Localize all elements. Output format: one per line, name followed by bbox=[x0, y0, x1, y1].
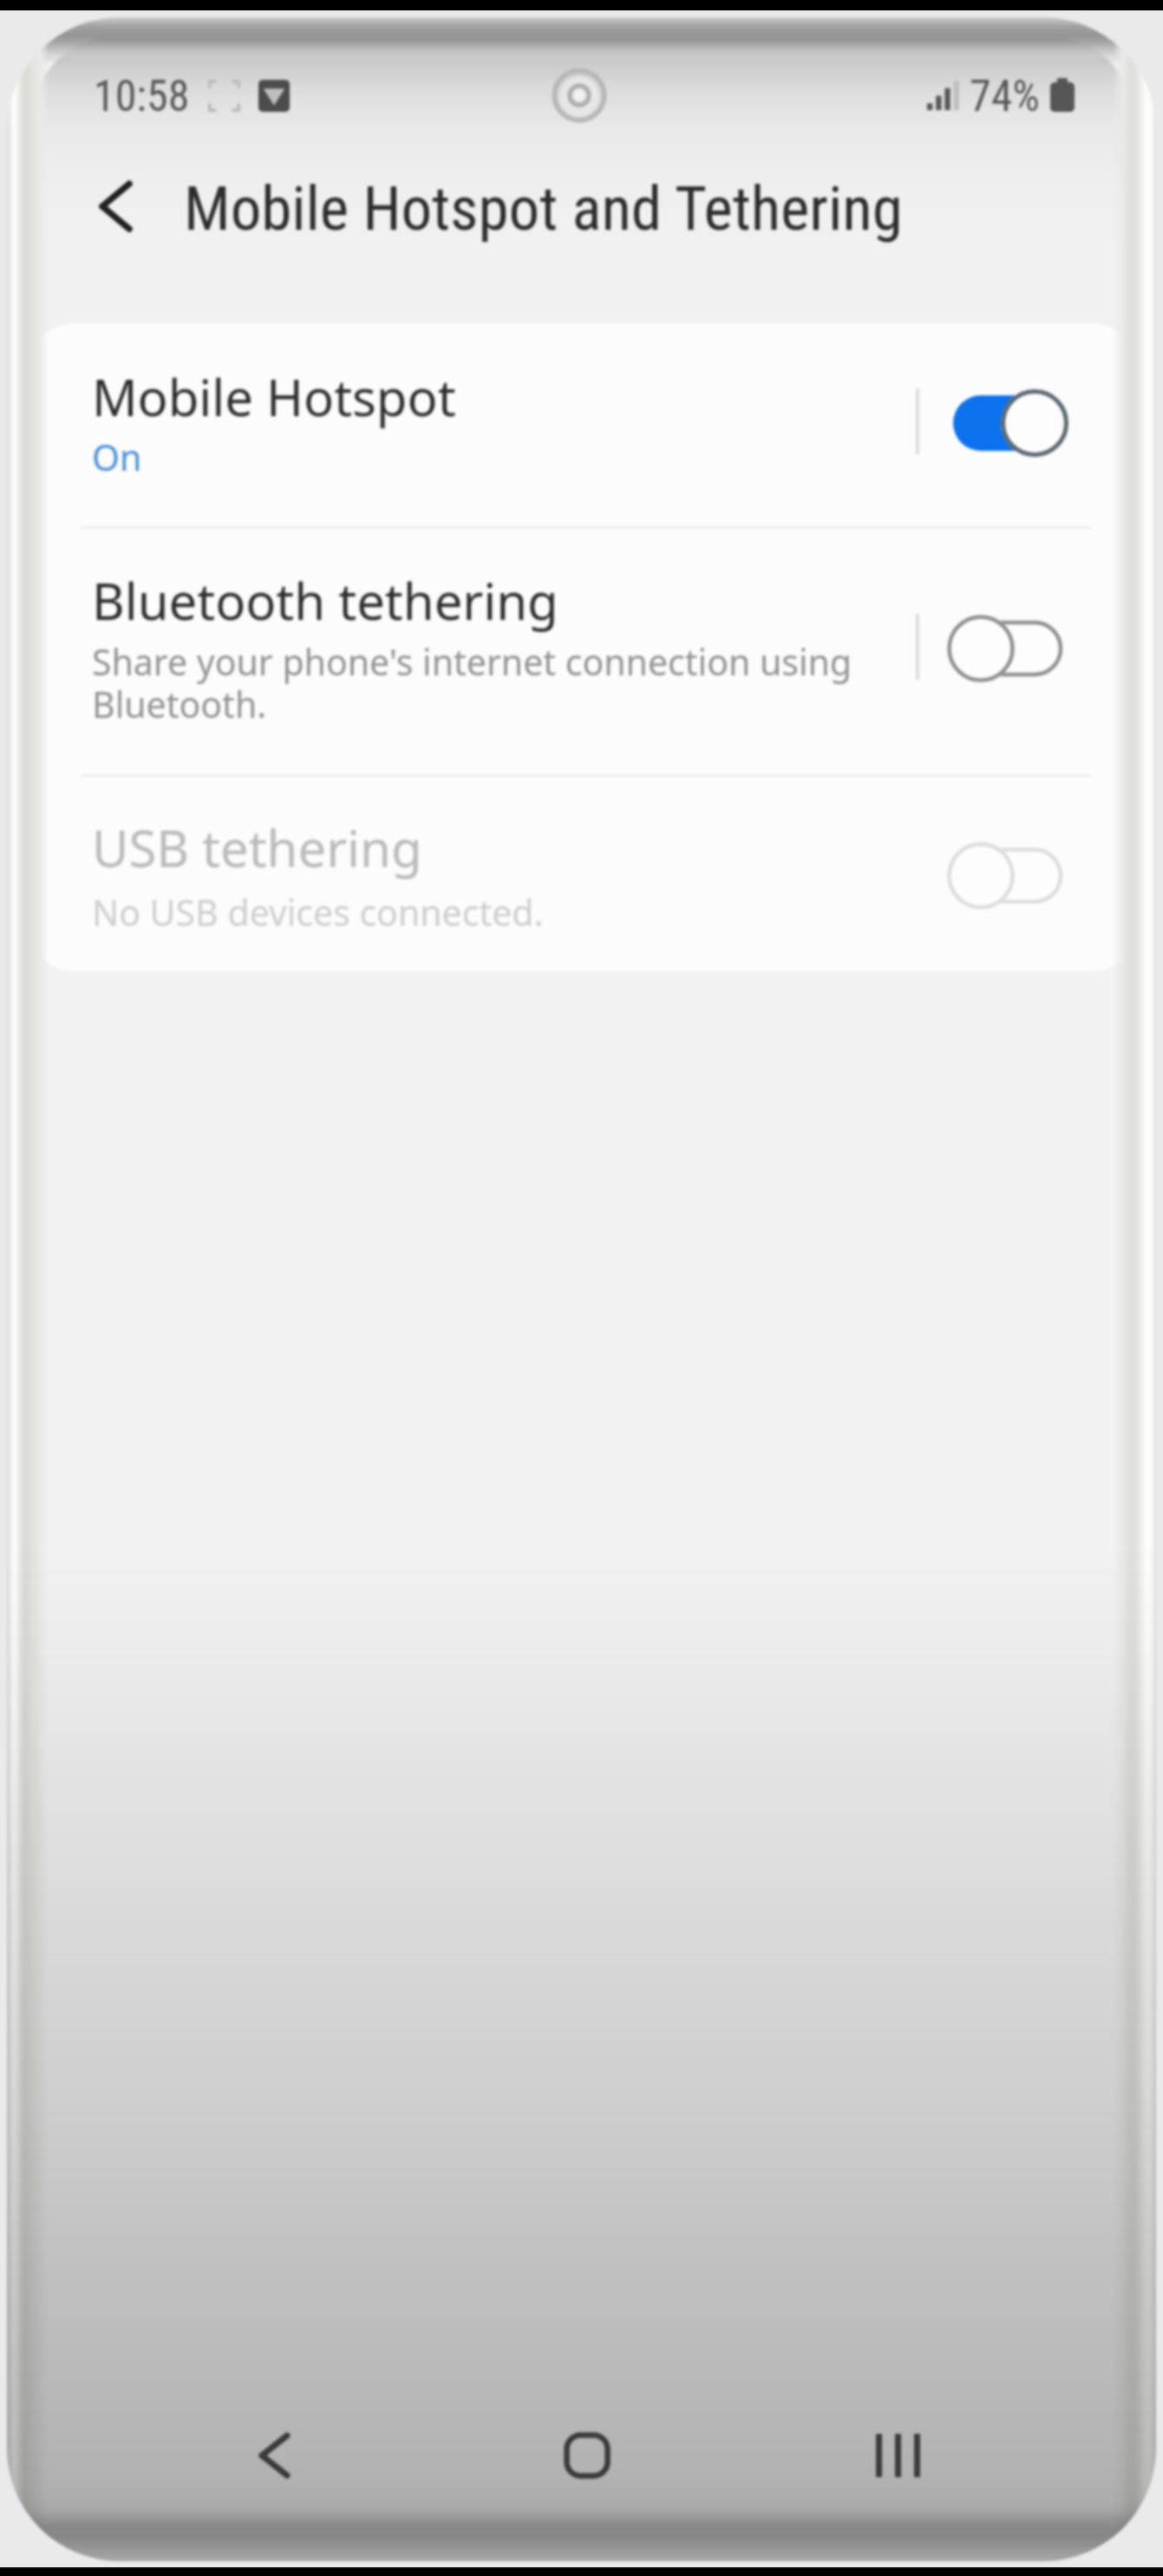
staticText: Mobile Hotspot bbox=[92, 362, 456, 431]
button[interactable] bbox=[31, 774, 1134, 971]
button[interactable]: Switch on bbox=[953, 384, 1069, 462]
button[interactable]: Switch off bbox=[953, 610, 1069, 688]
staticText: On bbox=[92, 433, 142, 481]
button[interactable] bbox=[31, 323, 1134, 526]
staticText: Mobile Hotspot and Tethering bbox=[184, 173, 903, 245]
staticText: 10:58 bbox=[94, 71, 190, 122]
staticText: Bluetooth. bbox=[92, 680, 267, 728]
button[interactable] bbox=[31, 526, 1134, 774]
staticText: No USB devices connected. bbox=[92, 888, 544, 936]
button[interactable]: Home bbox=[522, 2390, 652, 2521]
button[interactable]: Navigate up bbox=[74, 165, 157, 248]
staticText: 74% bbox=[970, 71, 1041, 122]
button[interactable]: Recent apps bbox=[833, 2390, 963, 2521]
button[interactable]: Back bbox=[209, 2390, 339, 2521]
button[interactable]: Switch off bbox=[953, 837, 1069, 915]
staticText: Share your phone's internet connection u… bbox=[92, 637, 853, 686]
staticText: Bluetooth tethering bbox=[92, 566, 559, 635]
staticText: USB tethering bbox=[92, 813, 422, 882]
